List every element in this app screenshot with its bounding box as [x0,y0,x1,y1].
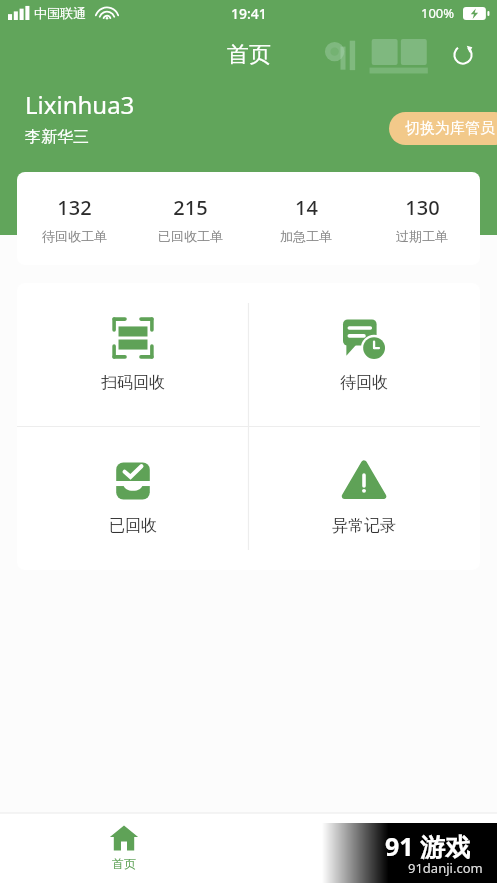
button[interactable]: 待回收 [248,283,480,426]
button[interactable]: 14 [248,172,364,265]
staticText: Lixinhua3 [25,88,135,121]
staticText: 已回收 [109,516,157,536]
button[interactable]: 132 [17,172,132,265]
staticText: 李新华三 [25,127,89,147]
button[interactable]: 扫码回收 [17,283,248,426]
button[interactable]: 切换为库管员 [389,112,497,145]
staticText: 加急工单 [280,228,332,244]
staticText: 已回收工单 [158,228,223,244]
staticText: 首页 [227,41,271,69]
button[interactable]: 刷新 [443,35,483,75]
staticText: 切换为库管员 [405,119,495,138]
staticText: 91 游戏 [385,829,471,863]
button[interactable]: 我的 [248,813,497,883]
staticText: 待回收工单 [42,228,107,244]
button[interactable]: 215 [132,172,248,265]
staticText: 130 [405,194,440,221]
staticText: 14 [295,194,318,221]
button[interactable]: 130 [364,172,480,265]
staticText: 扫码回收 [101,373,165,393]
button[interactable]: 首页 [0,813,248,883]
staticText: 过期工单 [396,228,448,244]
button[interactable]: 异常记录 [248,426,480,570]
button[interactable]: 已回收 [17,426,248,570]
staticText: 19:41 [231,4,267,23]
staticText: 91danji.com [408,859,483,877]
staticText: 中国联通 [34,5,86,21]
staticText: 异常记录 [332,516,396,536]
staticText: 待回收 [340,373,388,393]
staticText: 132 [57,194,92,221]
staticText: 215 [173,194,208,221]
staticText: 我的 [361,856,385,871]
staticText: 100% [421,4,455,22]
staticText: 首页 [112,856,136,871]
